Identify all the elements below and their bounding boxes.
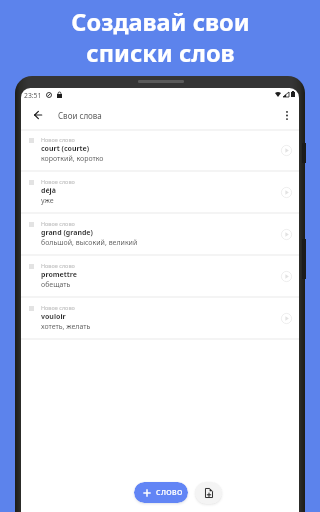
button[interactable]: СЛОВО: [134, 482, 188, 503]
button[interactable]: Новое слово: [21, 214, 299, 256]
button[interactable]: More options: [277, 105, 297, 125]
button[interactable]: Новое слово: [21, 256, 299, 298]
button[interactable]: Back: [28, 105, 48, 125]
staticText: déjà: [41, 186, 56, 196]
staticText: grand (grande): [41, 228, 93, 238]
staticText: Новое слово: [41, 262, 75, 269]
button[interactable]: Play pronunciation: [279, 143, 293, 157]
button[interactable]: Новое слово: [21, 130, 299, 172]
button[interactable]: Новое слово: [21, 298, 299, 340]
staticText: vouloir: [41, 312, 66, 322]
staticText: court (courte): [41, 144, 90, 154]
button[interactable]: Play pronunciation: [279, 185, 293, 199]
button[interactable]: Play pronunciation: [279, 311, 293, 325]
button[interactable]: Свои слова: [49, 107, 93, 124]
staticText: 23:51: [24, 91, 42, 100]
staticText: СЛОВО: [156, 488, 183, 498]
staticText: Новое слово: [41, 220, 75, 227]
staticText: большой, высокий, великий: [41, 238, 138, 248]
button[interactable]: Play pronunciation: [279, 269, 293, 283]
staticText: хотеть, желать: [41, 322, 91, 332]
button[interactable]: Новое слово: [21, 172, 299, 214]
button[interactable]: Play pronunciation: [279, 227, 293, 241]
staticText: Новое слово: [41, 136, 75, 143]
staticText: короткий, коротко: [41, 154, 104, 164]
staticText: обещать: [41, 280, 71, 290]
staticText: Создавай свои списки слов: [71, 6, 250, 69]
staticText: уже: [41, 196, 54, 206]
staticText: Свои слова: [58, 110, 102, 121]
staticText: Новое слово: [41, 178, 75, 185]
staticText: Новое слово: [41, 304, 75, 311]
button[interactable]: Add words from file: [195, 482, 222, 504]
staticText: promettre: [41, 270, 78, 280]
